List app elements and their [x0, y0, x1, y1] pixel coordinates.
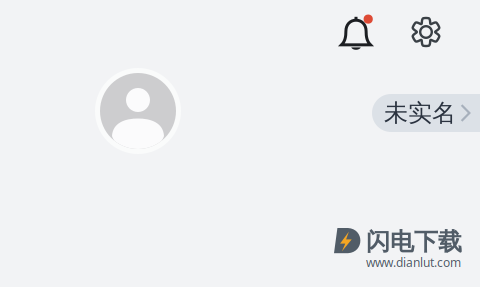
button[interactable]: Notifications: [333, 9, 377, 53]
staticText: www.dianlut.com: [366, 254, 461, 270]
button[interactable]: Settings: [404, 10, 448, 54]
staticText: 未实名: [384, 98, 456, 128]
staticText: 闪电下载: [366, 227, 462, 256]
button[interactable]: 未实名: [372, 94, 480, 132]
button[interactable]: Profile photo: [95, 68, 181, 154]
